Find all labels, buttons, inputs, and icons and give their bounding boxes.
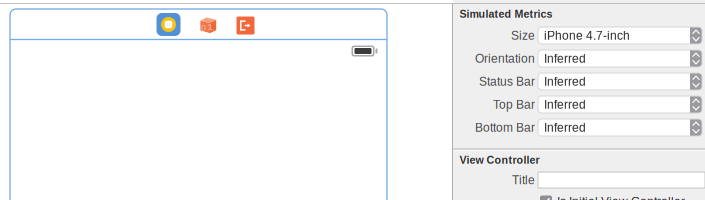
- button[interactable]: Title: [538, 172, 705, 188]
- staticText: Bottom Bar: [475, 121, 535, 134]
- staticText: Is Initial View Controller: [557, 195, 685, 200]
- button[interactable]: Inferred: [538, 96, 702, 113]
- staticText: Inferred: [544, 52, 586, 65]
- button[interactable]: Exit: [236, 16, 254, 34]
- staticText: 0: [201, 22, 206, 33]
- staticText: Inferred: [544, 75, 586, 88]
- staticText: iPhone 4.7-inch: [544, 29, 630, 42]
- staticText: Size: [511, 29, 535, 42]
- button[interactable]: Is Initial View Controller: [540, 195, 700, 200]
- button[interactable]: Inferred: [538, 119, 702, 136]
- staticText: View Controller: [459, 154, 539, 166]
- button[interactable]: Inferred: [538, 73, 702, 90]
- staticText: Inferred: [544, 121, 586, 134]
- staticText: Orientation: [475, 52, 535, 65]
- staticText: Inferred: [544, 98, 586, 111]
- button[interactable]: Inferred: [538, 50, 702, 67]
- staticText: 1: [207, 21, 212, 32]
- button[interactable]: iPhone 4.7-inch: [538, 27, 702, 44]
- staticText: Simulated Metrics: [459, 8, 552, 20]
- staticText: Status Bar: [479, 75, 535, 88]
- staticText: Title: [512, 173, 535, 187]
- button[interactable]: View Controller: [156, 13, 180, 36]
- button[interactable]: First Responder: [199, 16, 218, 34]
- staticText: Top Bar: [493, 98, 535, 111]
